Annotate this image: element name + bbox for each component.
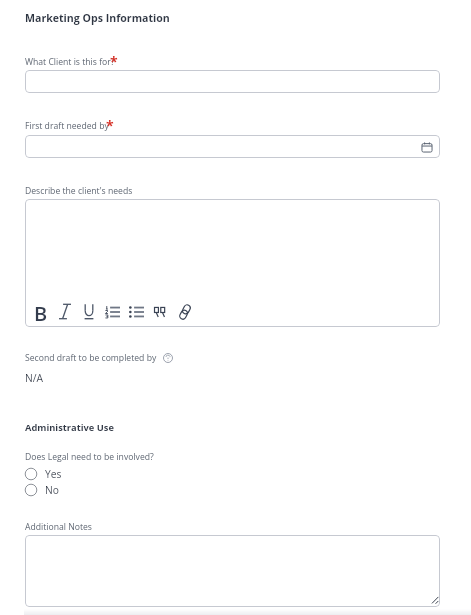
button[interactable]: Yes [23,466,62,482]
staticText: * [106,116,114,135]
button[interactable] [25,535,440,607]
staticText: Administrative Use [25,421,114,434]
staticText: Does Legal need to be involved? [25,451,154,463]
button[interactable]: Select date [25,135,440,158]
button[interactable]: Numbered list [101,300,124,323]
button[interactable]: Bold [29,300,52,323]
button[interactable]: Block quote [149,300,172,323]
staticText: Second draft to be completed by [25,352,157,364]
staticText: Describe the client's needs [25,185,133,197]
button[interactable]: No [23,482,59,498]
staticText: No [45,483,59,497]
staticText: Additional Notes [25,521,92,533]
staticText: What Client is this for? [25,56,115,68]
staticText: First draft needed by [25,120,109,132]
staticText: Marketing Ops Information [25,11,170,25]
button[interactable]: Bulleted list [125,300,148,323]
button[interactable]: Select date [421,141,433,153]
staticText: * [110,52,118,71]
staticText: Yes [45,467,62,481]
button[interactable]: Underline [77,300,100,323]
button[interactable]: Italic [53,300,76,323]
button[interactable]: Help [163,353,173,363]
button[interactable] [25,70,440,93]
button[interactable]: Insert link [173,300,196,323]
staticText: N/A [25,371,44,385]
button[interactable] [25,199,440,327]
staticText: B [34,300,48,323]
